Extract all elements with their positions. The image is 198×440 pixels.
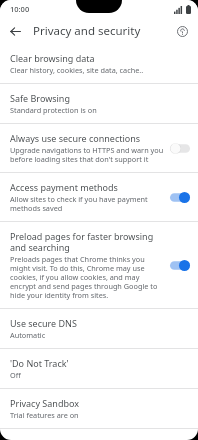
button[interactable]: Privacy Sandbox [0,389,198,428]
staticText: 10:00 [10,4,30,14]
staticText: Always use secure connections [10,132,141,144]
button[interactable]: Access payment methods [0,173,198,221]
staticText: Off [10,370,21,380]
staticText: Automatic [10,330,46,340]
staticText: Privacy Sandbox [10,397,80,409]
staticText: Access payment methods [10,181,118,193]
button[interactable]: Safe Browsing [0,84,198,123]
button[interactable]: Clear browsing data [0,44,198,83]
button[interactable]: Back [4,20,26,42]
staticText: 'Do Not Track' [10,357,69,369]
button[interactable]: Help [171,20,193,42]
staticText: Use secure DNS [10,317,77,329]
staticText: Preloads pages that Chrome thinks you mi… [10,254,164,300]
button[interactable]: Use secure DNS [0,309,198,348]
staticText: Clear browsing data [10,52,95,64]
staticText: Standard protection is on [10,105,97,115]
staticText: Trial features are on [10,410,79,420]
staticText: Preload pages for faster browsing and se… [10,230,164,253]
staticText: Safe Browsing [10,92,70,104]
button[interactable]: 'Do Not Track' [0,349,198,388]
staticText: Allow sites to check if you have payment… [10,194,164,213]
staticText: Privacy and security [33,23,141,39]
button[interactable]: Preload pages for faster browsing and se… [0,222,198,308]
staticText: Upgrade navigations to HTTPS and warn yo… [10,145,164,164]
button[interactable]: For more settings that relate to privacy… [0,429,198,440]
button[interactable]: Always use secure connections [0,124,198,172]
staticText: Clear history, cookies, site data, cache… [10,65,144,75]
